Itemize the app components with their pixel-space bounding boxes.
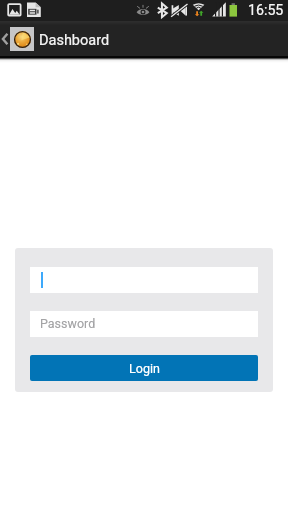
staticText: Login [129, 361, 160, 376]
button[interactable]: Login [30, 355, 258, 381]
button[interactable]: Password [30, 311, 258, 337]
staticText: Dashboard [39, 32, 110, 49]
button[interactable] [30, 267, 258, 293]
button[interactable]: Navigate up [0, 21, 34, 56]
staticText: 16:55 [248, 2, 284, 19]
staticText: Password [40, 316, 96, 331]
